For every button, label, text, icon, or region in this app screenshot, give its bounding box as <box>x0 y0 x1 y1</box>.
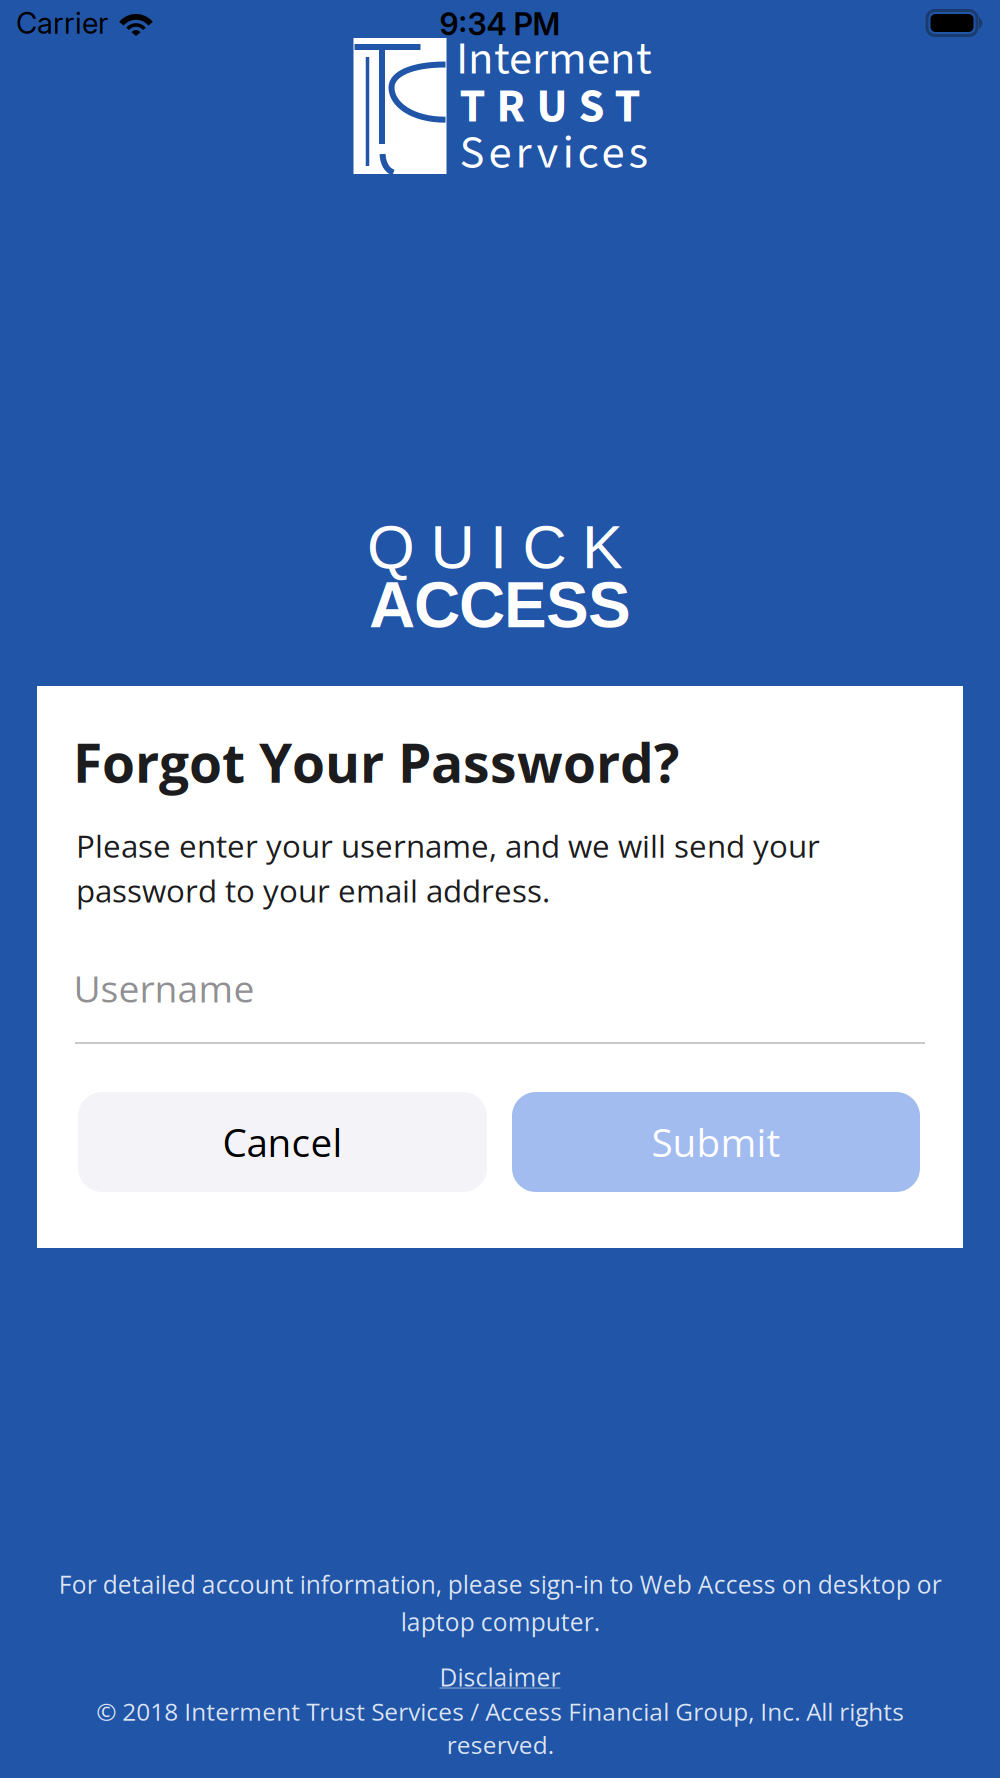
staticText: For detailed account information, please… <box>58 1568 941 1638</box>
staticText: TRUST <box>459 74 640 140</box>
button[interactable]: Submit <box>512 1092 920 1192</box>
staticText: Username <box>73 963 254 1013</box>
staticText: Cancel <box>222 1116 342 1168</box>
staticText: Interment <box>456 26 652 92</box>
staticText: ACCESS <box>369 569 631 641</box>
staticText: Forgot Your Password? <box>73 726 679 798</box>
button[interactable]: Cancel <box>78 1092 487 1192</box>
staticText: Please enter your username, and we will … <box>76 824 820 912</box>
staticText: Submit <box>651 1116 780 1168</box>
staticText: QUICK <box>367 513 623 581</box>
staticText: Services <box>459 120 648 186</box>
button[interactable]: Disclaimer <box>439 1660 560 1694</box>
staticText: Carrier <box>16 5 108 41</box>
staticText: © 2018 Interment Trust Services / Access… <box>96 1695 904 1761</box>
staticText: 9:34 PM <box>439 5 560 42</box>
staticText: Disclaimer <box>439 1660 560 1694</box>
